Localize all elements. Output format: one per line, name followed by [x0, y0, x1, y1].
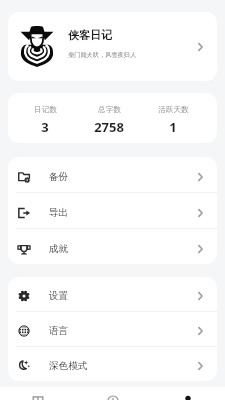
staticText: 成就: [49, 243, 198, 255]
button[interactable]: 语言: [8, 312, 217, 346]
button[interactable]: 导出: [8, 193, 217, 228]
staticText: 设置: [49, 290, 198, 302]
button[interactable]: 深色模式: [8, 347, 217, 381]
staticText: 语言: [49, 325, 198, 337]
staticText: 活跃天数: [158, 105, 189, 115]
staticText: 导出: [49, 207, 198, 219]
button[interactable]: Timeline: [75, 387, 150, 400]
staticText: 柴门闻犬吠，风雪夜归人: [68, 51, 137, 59]
button[interactable]: 设置: [8, 277, 217, 311]
button[interactable]: 侠客日记: [8, 12, 217, 81]
staticText: 3: [41, 118, 49, 136]
staticText: 总字数: [98, 105, 121, 115]
staticText: 备份: [49, 171, 198, 183]
button[interactable]: Profile: [150, 387, 225, 400]
staticText: 深色模式: [49, 360, 198, 372]
staticText: 2758: [94, 118, 124, 136]
button[interactable]: 备份: [8, 157, 217, 192]
button[interactable]: 成就: [8, 229, 217, 264]
button[interactable]: Diary: [0, 387, 75, 400]
staticText: 日记数: [34, 105, 57, 115]
staticText: 1: [169, 118, 177, 136]
staticText: 侠客日记: [68, 28, 112, 42]
